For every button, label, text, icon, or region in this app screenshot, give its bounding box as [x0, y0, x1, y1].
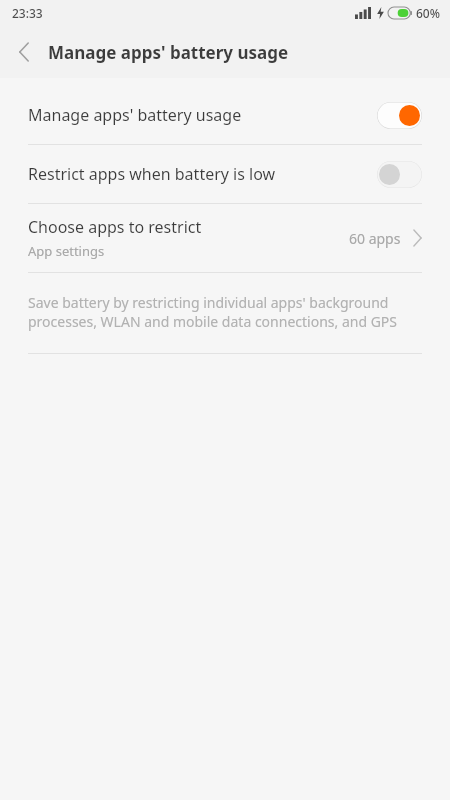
button[interactable]: Toggle off: [377, 161, 422, 188]
button[interactable]: Toggle on: [377, 102, 422, 129]
staticText: Choose apps to restrict: [28, 216, 202, 238]
staticText: App settings: [28, 242, 105, 260]
staticText: Manage apps' battery usage: [28, 104, 377, 126]
button[interactable]: Back: [0, 28, 48, 76]
staticText: 23:33: [12, 5, 43, 21]
button[interactable]: Restrict apps when battery is low: [0, 145, 450, 203]
staticText: Manage apps' battery usage: [48, 41, 289, 64]
button[interactable]: Manage apps' battery usage: [0, 86, 450, 144]
staticText: 60%: [416, 5, 440, 21]
staticText: Restrict apps when battery is low: [28, 163, 377, 185]
button[interactable]: Choose apps to restrict: [0, 204, 450, 272]
staticText: Save battery by restricting individual a…: [28, 293, 422, 331]
staticText: 60 apps: [349, 229, 401, 248]
